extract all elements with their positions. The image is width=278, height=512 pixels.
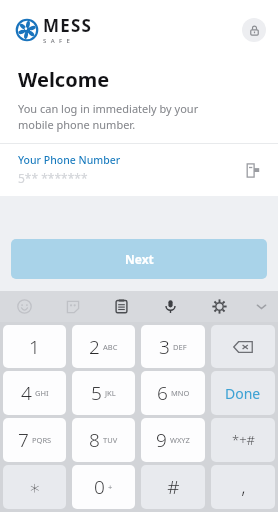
button[interactable]: Emoji	[0, 291, 48, 322]
button[interactable]: Your Phone Number	[0, 153, 278, 186]
staticText: 3	[159, 334, 170, 360]
staticText: #	[167, 474, 180, 500]
button[interactable]: 8	[72, 418, 135, 462]
button[interactable]: Voice input	[146, 291, 195, 322]
staticText: 2	[89, 334, 100, 360]
staticText: ABC	[103, 342, 118, 352]
staticText: 0	[94, 474, 105, 500]
button[interactable]: 9	[141, 418, 205, 462]
button[interactable]: 2	[72, 325, 135, 368]
button[interactable]: Keyboard settings	[195, 291, 244, 322]
staticText: +	[108, 482, 113, 492]
staticText: ,	[241, 474, 246, 500]
staticText: S A F E	[43, 37, 72, 45]
button[interactable]: ,	[211, 465, 275, 509]
button[interactable]: Collapse keyboard	[244, 291, 278, 322]
staticText: JKL	[105, 388, 116, 398]
button[interactable]: Backspace	[211, 325, 275, 368]
button[interactable]: Stickers	[48, 291, 97, 322]
button[interactable]: ∗	[3, 465, 66, 509]
staticText: 7	[18, 427, 29, 453]
staticText: GHI	[35, 388, 49, 398]
button[interactable]: Pick from contacts	[242, 159, 264, 181]
button[interactable]: Next	[11, 239, 267, 279]
staticText: Done	[225, 384, 261, 403]
staticText: WXYZ	[170, 435, 190, 445]
staticText: MESS	[43, 14, 93, 37]
button[interactable]: 6	[141, 371, 205, 415]
staticText: *+#	[232, 431, 255, 449]
staticText: MNO	[171, 388, 190, 398]
staticText: Welcome	[18, 66, 110, 93]
button[interactable]: #	[141, 465, 205, 509]
button[interactable]: 4	[3, 371, 66, 415]
staticText: 5** *******	[18, 170, 88, 186]
staticText: You can log in immediately by your mobil…	[18, 101, 199, 132]
button[interactable]: 3	[141, 325, 205, 368]
button[interactable]: Done	[211, 371, 275, 415]
staticText: ∗	[29, 476, 41, 498]
staticText: DEF	[173, 342, 187, 352]
staticText: 9	[156, 427, 167, 453]
staticText: TUV	[103, 435, 118, 445]
button[interactable]: 1	[3, 325, 66, 368]
staticText: 6	[157, 380, 168, 406]
staticText: Next	[125, 251, 154, 267]
button[interactable]: Clipboard	[97, 291, 146, 322]
staticText: 4	[21, 380, 32, 406]
button[interactable]: 5	[72, 371, 135, 415]
staticText: 8	[89, 427, 100, 453]
staticText: Your Phone Number	[18, 153, 121, 167]
button[interactable]: 7	[3, 418, 66, 462]
button[interactable]: 0	[72, 465, 135, 509]
button[interactable]: *+#	[211, 418, 275, 462]
staticText: PQRS	[32, 435, 52, 445]
button[interactable]: Privacy lock	[242, 18, 266, 42]
staticText: 5	[91, 380, 102, 406]
staticText: 1	[29, 334, 40, 360]
